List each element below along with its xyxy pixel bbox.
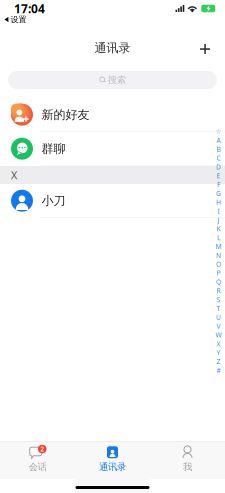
staticText: P bbox=[216, 269, 220, 277]
staticText: F bbox=[217, 180, 220, 189]
staticText: O bbox=[216, 260, 221, 269]
staticText: V bbox=[216, 322, 220, 331]
staticText: A bbox=[216, 136, 220, 145]
staticText: 搜索 bbox=[108, 74, 126, 86]
staticText: 2 bbox=[40, 445, 44, 453]
staticText: C bbox=[216, 153, 220, 162]
button[interactable]: 搜索 bbox=[0, 64, 225, 98]
staticText: Q bbox=[216, 277, 221, 286]
staticText: 我 bbox=[183, 461, 192, 473]
staticText: S bbox=[216, 295, 220, 304]
staticText: T bbox=[216, 304, 220, 313]
staticText: 小刀 bbox=[41, 193, 65, 208]
staticText: L bbox=[217, 233, 220, 242]
staticText: 通讯录 bbox=[99, 461, 126, 473]
staticText: Y bbox=[216, 348, 220, 357]
staticText: U bbox=[216, 313, 221, 322]
staticText: N bbox=[216, 251, 221, 260]
button[interactable]: 我 bbox=[150, 442, 225, 479]
staticText: 17:04 bbox=[14, 0, 45, 16]
staticText: I bbox=[217, 207, 219, 215]
button[interactable]: 通讯录 bbox=[75, 442, 150, 479]
staticText: 会话 bbox=[28, 461, 46, 473]
staticText: X bbox=[11, 168, 17, 182]
staticText: 群聊 bbox=[41, 141, 65, 156]
staticText: X bbox=[216, 339, 220, 348]
staticText: Z bbox=[216, 357, 220, 366]
staticText: 新的好友 bbox=[41, 107, 89, 122]
staticText: 通讯录 bbox=[94, 41, 130, 55]
staticText: W bbox=[215, 330, 221, 339]
staticText: R bbox=[216, 286, 220, 295]
staticText: ☆ bbox=[215, 128, 221, 135]
button[interactable]: 小刀 bbox=[0, 184, 225, 218]
staticText: G bbox=[216, 189, 221, 198]
staticText: J bbox=[217, 215, 219, 224]
button[interactable]: 新的好友 bbox=[0, 98, 225, 132]
staticText: H bbox=[216, 198, 221, 207]
button[interactable]: 群聊 bbox=[0, 132, 225, 166]
staticText: B bbox=[216, 145, 220, 154]
staticText: E bbox=[216, 171, 220, 180]
staticText: 设置 bbox=[10, 15, 26, 24]
staticText: M bbox=[215, 242, 221, 251]
staticText: # bbox=[216, 366, 220, 375]
button[interactable]: 2 bbox=[0, 442, 75, 479]
staticText: K bbox=[216, 224, 220, 233]
button[interactable]: Add contact bbox=[189, 28, 225, 62]
staticText: D bbox=[216, 162, 221, 171]
